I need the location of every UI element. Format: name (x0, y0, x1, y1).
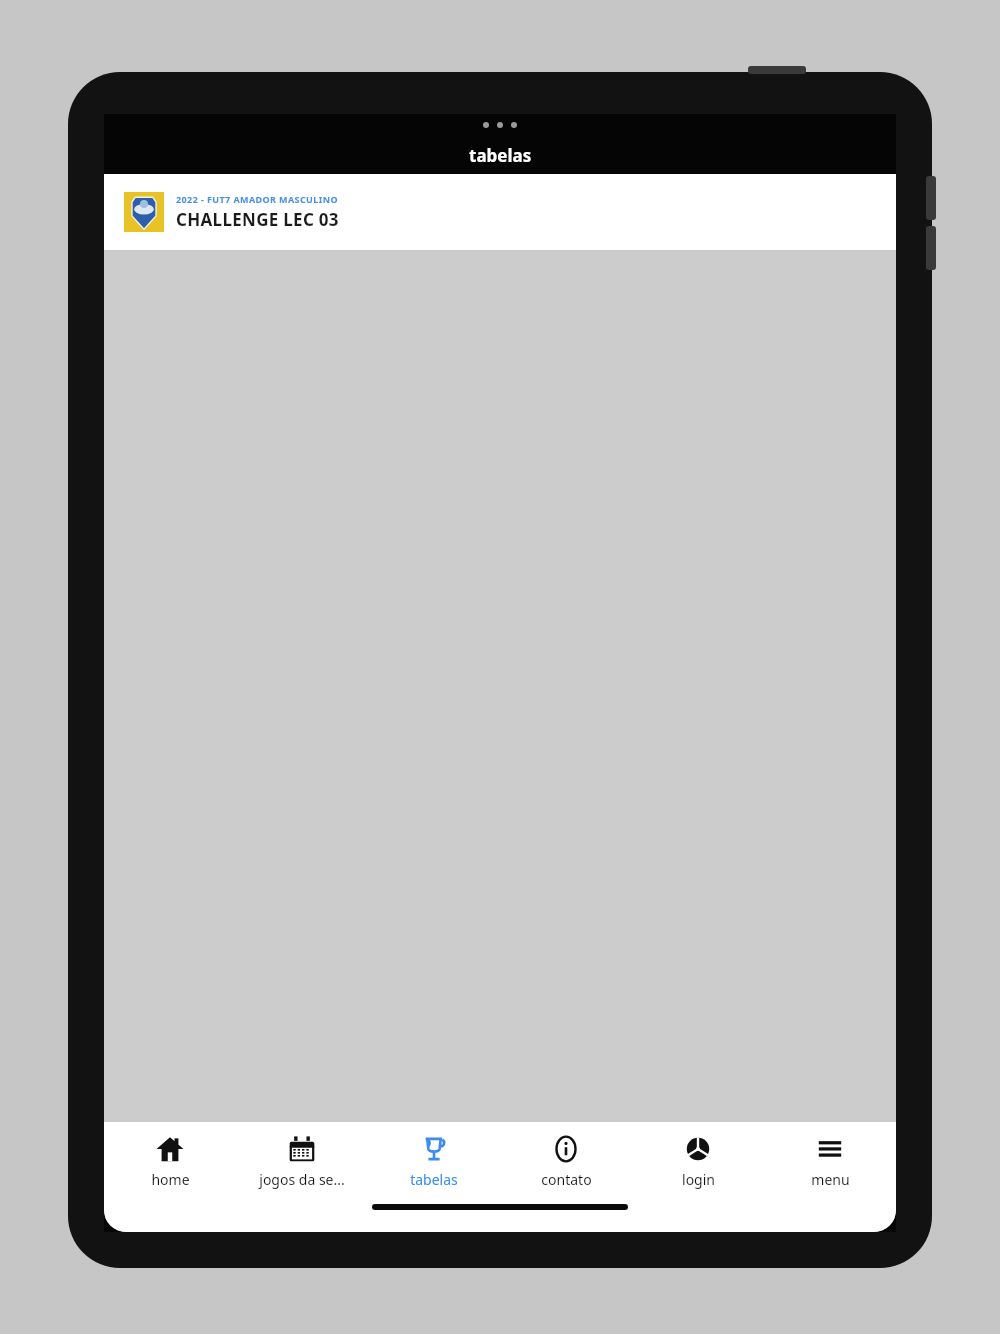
staticText: CHALLENGE LEC 03 (176, 208, 339, 231)
button[interactable]: contato (500, 1122, 632, 1202)
other: login (684, 1135, 712, 1163)
staticText: menu (811, 1170, 850, 1189)
staticText: tabelas (469, 144, 532, 167)
other: menu (816, 1135, 844, 1163)
button[interactable]: jogos da semana (236, 1122, 368, 1202)
other: contato (552, 1135, 580, 1163)
other: tabelas (420, 1135, 448, 1163)
button[interactable]: tabelas (368, 1122, 500, 1202)
staticText: home (151, 1170, 190, 1189)
button[interactable]: login (632, 1122, 764, 1202)
button[interactable]: home (104, 1122, 236, 1202)
other: home (156, 1135, 184, 1163)
button[interactable]: menu (764, 1122, 896, 1202)
staticText: login (682, 1170, 715, 1189)
other: jogos da semana (288, 1135, 316, 1163)
staticText: tabelas (410, 1170, 458, 1189)
staticText: 2022 - FUT7 AMADOR MASCULINO (176, 193, 338, 205)
staticText: contato (541, 1170, 592, 1189)
staticText: jogos da se... (259, 1170, 345, 1189)
